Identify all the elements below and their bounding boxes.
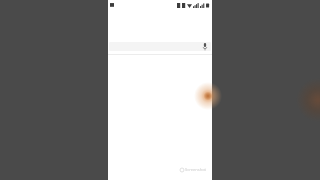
staticText: Screenshot: [185, 167, 206, 172]
button[interactable]: Voice search: [202, 42, 208, 51]
button[interactable]: Voice search: [108, 41, 212, 51]
